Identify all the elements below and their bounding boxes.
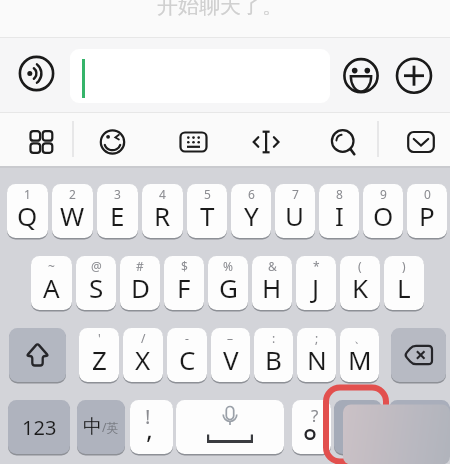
staticText: V — [223, 342, 239, 377]
staticText: ) — [402, 258, 406, 274]
staticText: 开始聊天了。 — [157, 0, 283, 19]
staticText: / — [141, 330, 146, 346]
staticText: ! — [145, 403, 151, 430]
staticText: B — [265, 342, 282, 377]
staticText: - — [185, 330, 189, 346]
button[interactable]: ( — [340, 256, 380, 310]
button[interactable]: $ — [164, 256, 204, 310]
staticText: 中 — [83, 415, 102, 439]
staticText: 1 — [24, 186, 31, 202]
staticText: X — [135, 342, 151, 377]
staticText: 4 — [159, 186, 166, 202]
staticText: G — [219, 270, 238, 305]
button[interactable]: / — [123, 328, 163, 382]
staticText: ~ — [48, 258, 55, 274]
button[interactable]: @ — [76, 256, 116, 310]
staticText: M — [348, 342, 372, 377]
staticText: 123 — [22, 414, 57, 441]
button[interactable]: - — [167, 328, 207, 382]
staticText: Z — [92, 342, 107, 377]
staticText: 、 — [354, 330, 366, 345]
staticText: , — [146, 411, 153, 446]
button[interactable]: 1 — [7, 184, 48, 238]
button[interactable] — [389, 400, 450, 454]
staticText: R — [154, 198, 171, 233]
button[interactable]: 9 — [363, 184, 403, 238]
button[interactable] — [176, 400, 284, 454]
button[interactable]: ' — [79, 328, 119, 382]
staticText: F — [177, 270, 191, 305]
staticText: C — [179, 342, 196, 377]
staticText: # — [136, 258, 144, 274]
button[interactable]: 中 — [77, 400, 125, 454]
staticText: A — [43, 270, 60, 305]
staticText: 3 — [114, 186, 121, 202]
staticText: $ — [181, 258, 188, 274]
button[interactable] — [300, 113, 375, 166]
button[interactable]: ! — [130, 400, 173, 454]
button[interactable] — [0, 113, 75, 166]
button[interactable]: & — [252, 256, 292, 310]
staticText: O — [373, 198, 394, 233]
button[interactable] — [75, 113, 150, 166]
button[interactable] — [9, 328, 66, 382]
button[interactable] — [334, 400, 382, 454]
button[interactable]: – — [211, 328, 250, 382]
staticText: % — [223, 258, 233, 274]
button[interactable]: 、 — [340, 328, 379, 382]
staticText: * — [313, 258, 320, 274]
staticText: S — [89, 270, 104, 305]
button[interactable]: 6 — [231, 184, 271, 238]
button[interactable] — [375, 113, 450, 166]
staticText: 7 — [292, 186, 299, 202]
staticText: P — [419, 198, 435, 233]
button[interactable] — [225, 113, 300, 166]
staticText: ; — [315, 330, 319, 346]
button[interactable]: ? — [292, 400, 331, 454]
staticText: U — [285, 198, 305, 233]
staticText: W — [60, 198, 85, 233]
button[interactable]: * — [296, 256, 336, 310]
button[interactable]: ; — [297, 328, 336, 382]
staticText: /英 — [102, 419, 119, 435]
staticText: 5 — [204, 186, 211, 202]
button[interactable] — [391, 328, 446, 382]
staticText: ' — [98, 330, 101, 346]
button[interactable]: 0 — [407, 184, 447, 238]
staticText: : — [272, 330, 276, 346]
staticText: J — [312, 270, 320, 305]
button[interactable]: 8 — [319, 184, 359, 238]
button[interactable]: 3 — [97, 184, 138, 238]
staticText: Y — [244, 198, 259, 233]
button[interactable]: # — [120, 256, 160, 310]
staticText: D — [131, 270, 150, 305]
staticText: – — [227, 330, 234, 346]
staticText: @ — [91, 258, 102, 274]
staticText: 2 — [69, 186, 76, 202]
button[interactable]: 123 — [8, 400, 70, 454]
staticText: Q — [17, 198, 38, 233]
staticText: E — [110, 198, 125, 233]
button[interactable] — [396, 56, 433, 93]
staticText: ? — [311, 404, 319, 427]
staticText: T — [200, 198, 215, 233]
button[interactable]: ) — [384, 256, 424, 310]
staticText: H — [262, 270, 282, 305]
button[interactable] — [150, 113, 225, 166]
button[interactable] — [343, 56, 380, 93]
button[interactable]: ~ — [31, 256, 72, 310]
button[interactable]: 2 — [52, 184, 93, 238]
button[interactable] — [70, 49, 330, 103]
staticText: 0 — [424, 186, 431, 202]
button[interactable]: % — [208, 256, 248, 310]
button[interactable]: 5 — [187, 184, 227, 238]
staticText: 8 — [336, 186, 343, 202]
staticText: K — [352, 270, 369, 305]
staticText: 9 — [380, 186, 387, 202]
button[interactable]: 4 — [142, 184, 183, 238]
button[interactable]: : — [254, 328, 293, 382]
button[interactable]: 7 — [275, 184, 315, 238]
staticText: ( — [358, 258, 362, 274]
staticText: L — [397, 270, 411, 305]
button[interactable] — [18, 55, 55, 92]
